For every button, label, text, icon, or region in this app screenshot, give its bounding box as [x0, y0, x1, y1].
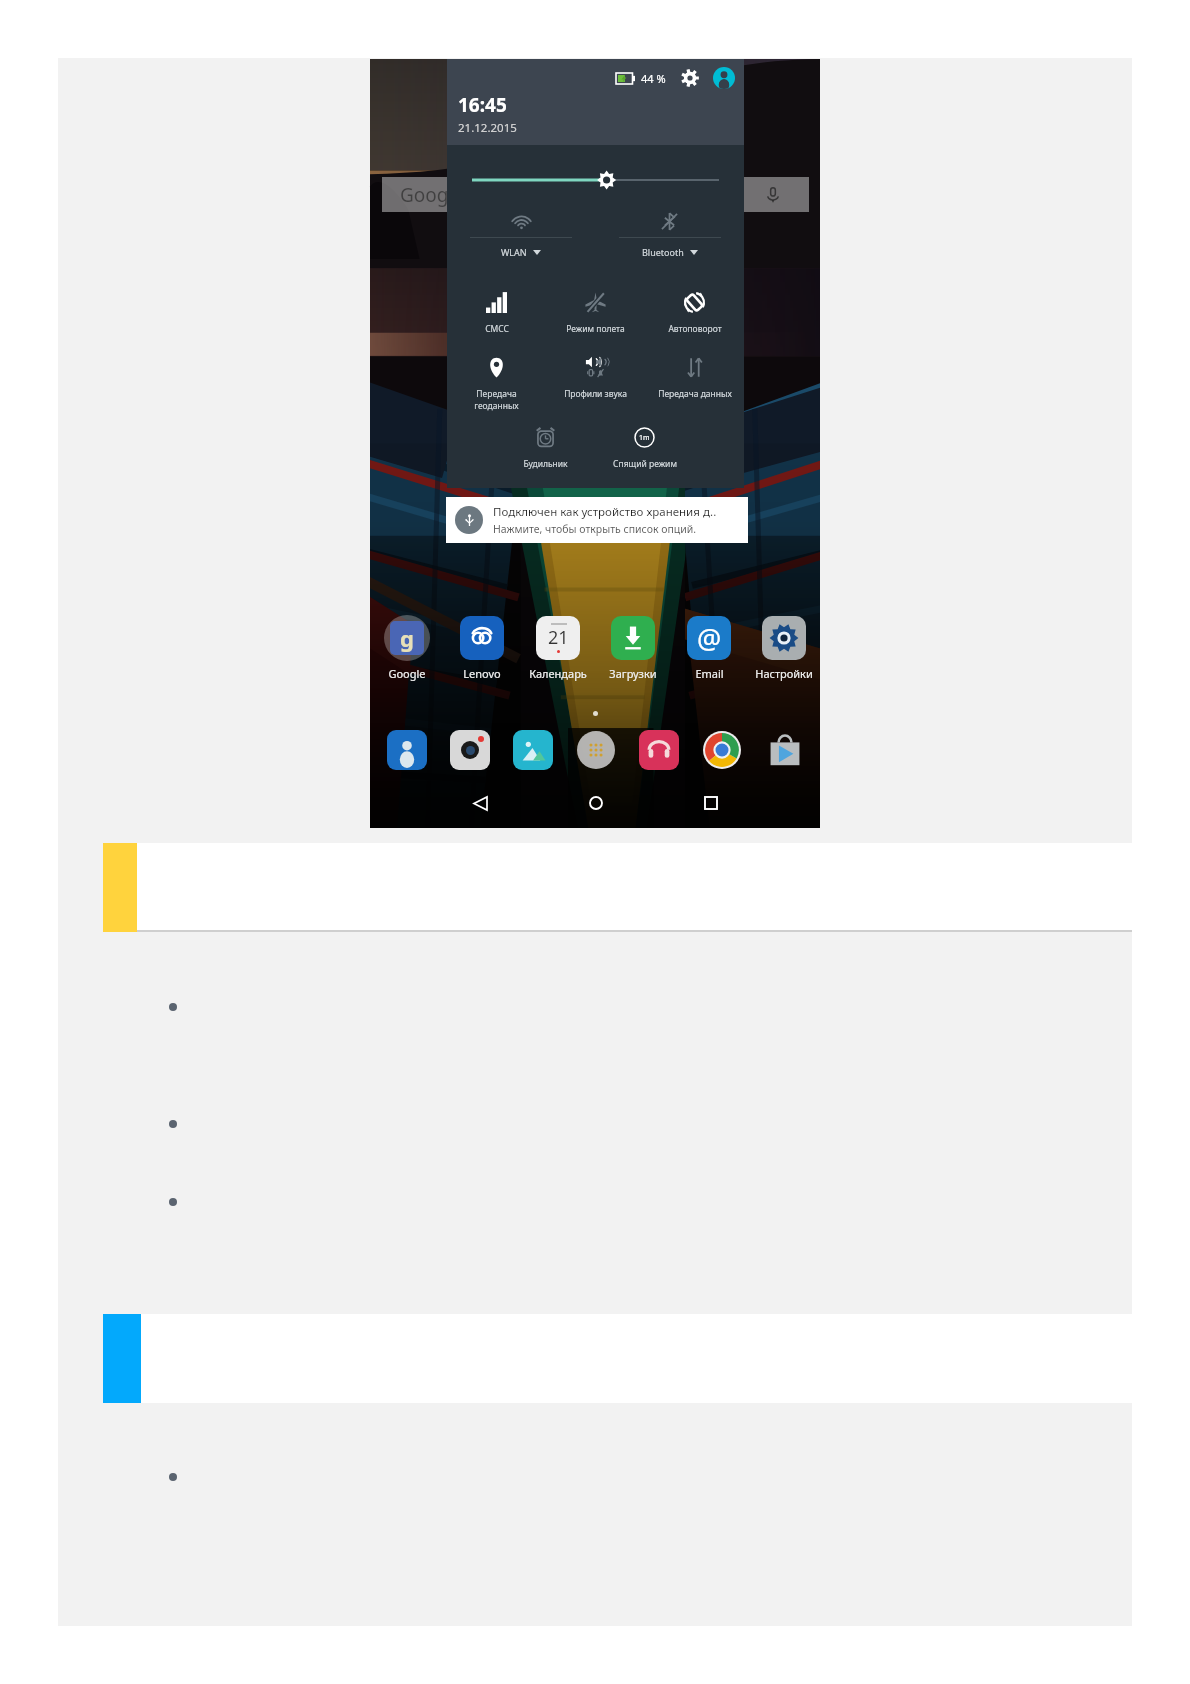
staticText: Bluetooth: [642, 246, 684, 258]
button[interactable]: Recent apps: [653, 782, 768, 824]
button[interactable]: Back: [423, 782, 538, 824]
staticText: Подключен как устройство хранения д..: [493, 504, 717, 520]
staticText: Спящий режим: [613, 458, 677, 470]
button[interactable]: Play Маркет: [764, 729, 806, 771]
button[interactable]: Передача геоданных: [447, 352, 546, 412]
button[interactable]: @: [672, 613, 746, 681]
staticText: Нажмите, чтобы открыть список опций.: [493, 522, 697, 536]
button[interactable]: Камера: [449, 729, 491, 771]
staticText: WLAN: [501, 246, 527, 258]
staticText: g: [400, 623, 414, 653]
button[interactable]: Settings: [679, 67, 701, 89]
staticText: Google: [400, 182, 465, 208]
button[interactable]: 21: [521, 613, 595, 681]
staticText: 1m: [639, 433, 650, 443]
staticText: CMCC: [485, 323, 509, 335]
staticText: Google: [388, 666, 426, 681]
staticText: Режим полета: [566, 323, 625, 335]
staticText: Профили звука: [564, 388, 627, 400]
staticText: Lenovo: [463, 666, 501, 681]
staticText: 21.12.2015: [458, 120, 517, 136]
button[interactable]: Google: [382, 177, 809, 212]
staticText: 21: [548, 625, 569, 650]
staticText: Автоповорот: [668, 323, 722, 335]
staticText: Email: [695, 666, 724, 681]
button[interactable]: Подключен как устройство хранения д..: [446, 497, 748, 543]
staticText: 44 %: [641, 71, 666, 86]
button[interactable]: Brightness: [447, 168, 744, 192]
button[interactable]: User profile: [713, 67, 735, 89]
button[interactable]: Chrome: [701, 729, 743, 771]
staticText: Загрузки: [609, 666, 657, 681]
button[interactable]: Автоповорот: [645, 287, 744, 335]
button[interactable]: Voice search: [763, 185, 783, 205]
button[interactable]: Передача данных: [645, 352, 744, 400]
button[interactable]: Контакты: [386, 729, 428, 771]
staticText: Будильник: [523, 458, 568, 470]
staticText: Настройки: [755, 666, 813, 681]
button[interactable]: CMCC: [447, 287, 546, 335]
button[interactable]: Музыка: [638, 729, 680, 771]
staticText: 16:45: [458, 92, 507, 118]
button[interactable]: Настройки: [747, 613, 821, 681]
button[interactable]: WLAN: [447, 205, 595, 258]
staticText: Передача геоданных: [474, 388, 519, 412]
button[interactable]: Галерея: [512, 729, 554, 771]
staticText: Календарь: [529, 666, 587, 681]
button[interactable]: 1m: [595, 422, 694, 470]
button[interactable]: Будильник: [496, 422, 595, 470]
button[interactable]: Профили звука: [546, 352, 645, 400]
button[interactable]: Lenovo: [445, 613, 519, 681]
staticText: Передача данных: [658, 388, 732, 400]
button[interactable]: Home: [538, 782, 653, 824]
button[interactable]: Режим полета: [546, 287, 645, 335]
button[interactable]: Все приложения: [575, 729, 617, 771]
button[interactable]: Bluetooth: [595, 205, 744, 258]
staticText: @: [697, 620, 722, 657]
button[interactable]: g: [370, 613, 444, 681]
button[interactable]: Загрузки: [596, 613, 670, 681]
